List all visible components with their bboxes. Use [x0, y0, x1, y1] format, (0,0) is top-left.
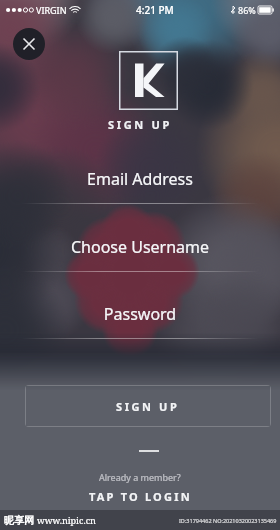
staticText: 4:21 PM	[136, 3, 174, 17]
staticText: Password	[0, 303, 280, 325]
staticText: SIGN UP	[116, 399, 180, 414]
staticText: www.nipic.cn	[37, 514, 96, 526]
button[interactable]: SIGN UP	[25, 385, 271, 427]
staticText: VIRGIN	[36, 4, 67, 16]
staticText: 86%	[238, 4, 256, 16]
button[interactable]: Close	[13, 28, 45, 60]
staticText: SIGN UP	[0, 117, 280, 132]
staticText: 昵享网	[4, 514, 34, 527]
staticText: Already a member?	[99, 471, 181, 483]
staticText: Email Address	[0, 168, 280, 190]
staticText: TAP TO LOGIN	[89, 489, 192, 504]
staticText: ID:31794462 NO:20210320023135469	[179, 517, 277, 524]
staticText: Choose Username	[0, 236, 280, 258]
button[interactable]: Already a member?	[0, 471, 280, 504]
